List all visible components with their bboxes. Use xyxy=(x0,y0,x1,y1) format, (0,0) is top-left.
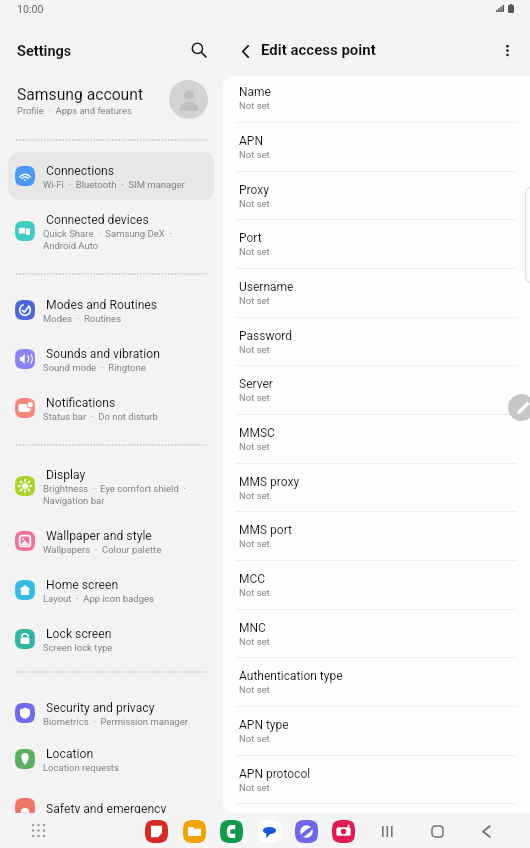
staticText: Not set xyxy=(239,198,270,209)
staticText: Security and privacy xyxy=(46,701,155,715)
staticText: Not set xyxy=(239,490,270,501)
staticText: Authentication type xyxy=(239,669,343,683)
staticText: 10:00 xyxy=(17,3,44,15)
button[interactable]: More options xyxy=(491,35,523,67)
button[interactable]: contacts xyxy=(220,820,243,843)
staticText: Not set xyxy=(239,538,270,549)
button[interactable]: Search xyxy=(181,32,217,68)
staticText: MNC xyxy=(239,621,266,635)
staticText: Profile · Apps and features xyxy=(17,105,132,116)
staticText: Edit access point xyxy=(261,41,376,59)
staticText: Server xyxy=(239,377,273,391)
staticText: Port xyxy=(239,231,262,245)
button[interactable]: Username xyxy=(222,268,530,317)
staticText: Sound mode · Ringtone xyxy=(43,362,146,373)
button[interactable]: Apps xyxy=(26,818,50,842)
staticText: Name xyxy=(239,85,271,99)
staticText: APN type xyxy=(239,718,289,732)
staticText: Not set xyxy=(239,684,270,695)
staticText: Biometrics · Permission manager xyxy=(43,716,188,727)
button[interactable]: camera xyxy=(332,820,355,843)
button[interactable]: Sounds and vibration xyxy=(8,335,214,383)
button[interactable]: Back xyxy=(475,820,497,842)
staticText: Proxy xyxy=(239,183,269,197)
staticText: Home screen xyxy=(46,578,119,592)
button[interactable]: Edge panel xyxy=(508,394,530,421)
button[interactable]: MVNO type xyxy=(222,803,530,813)
staticText: Screen lock type xyxy=(43,642,113,653)
button[interactable]: Proxy xyxy=(222,171,530,220)
staticText: Display xyxy=(46,468,86,482)
staticText: Quick Share · Samsung DeX · Android Auto xyxy=(43,228,172,251)
staticText: Location requests xyxy=(43,762,119,773)
staticText: Sounds and vibration xyxy=(46,347,160,361)
button[interactable]: Lock screen xyxy=(8,615,214,663)
button[interactable]: MMS port xyxy=(222,511,530,560)
button[interactable]: APN protocol xyxy=(222,755,530,804)
staticText: Password xyxy=(239,329,293,343)
button[interactable]: Password xyxy=(222,317,530,366)
button[interactable]: Authentication type xyxy=(222,657,530,706)
button[interactable]: notes xyxy=(145,820,168,843)
button[interactable]: Notifications xyxy=(8,384,214,432)
staticText: Not set xyxy=(239,344,270,355)
button[interactable]: Name xyxy=(222,76,530,122)
button[interactable]: Connections xyxy=(8,152,214,200)
button[interactable]: Back xyxy=(229,35,261,67)
button[interactable]: messages xyxy=(258,820,281,843)
staticText: Wi-Fi · Bluetooth · SIM manager xyxy=(43,179,185,190)
staticText: Not set xyxy=(239,782,270,793)
staticText: APN xyxy=(239,134,263,148)
staticText: Not set xyxy=(239,100,270,111)
button[interactable]: Port xyxy=(222,219,530,268)
button[interactable]: Wallpaper and style xyxy=(8,517,214,565)
staticText: Modes · Routines xyxy=(43,313,122,324)
button[interactable]: MNC xyxy=(222,609,530,658)
staticText: Safety and emergency xyxy=(46,802,167,816)
button[interactable]: Home screen xyxy=(8,566,214,614)
staticText: MCC xyxy=(239,572,266,586)
button[interactable]: Server xyxy=(222,365,530,414)
staticText: Location xyxy=(46,747,94,761)
staticText: MMSC xyxy=(239,426,275,440)
button[interactable]: files xyxy=(183,820,206,843)
staticText: Wallpaper and style xyxy=(46,529,152,543)
staticText: Connections xyxy=(46,164,115,178)
button[interactable]: Display xyxy=(8,459,214,513)
staticText: MMS proxy xyxy=(239,475,300,489)
staticText: Not set xyxy=(239,246,270,257)
staticText: Wallpapers · Colour palette xyxy=(43,544,162,555)
button[interactable]: Security and privacy xyxy=(8,689,214,737)
staticText: Not set xyxy=(239,636,270,647)
staticText: Samsung account xyxy=(17,85,144,103)
button[interactable]: Safety and emergency xyxy=(8,784,214,832)
staticText: Lock screen xyxy=(46,627,112,641)
staticText: Not set xyxy=(239,295,270,306)
button[interactable]: MCC xyxy=(222,560,530,609)
button[interactable]: Modes and Routines xyxy=(8,286,214,334)
staticText: Not set xyxy=(239,587,270,598)
button[interactable]: APN type xyxy=(222,706,530,755)
staticText: Notifications xyxy=(46,396,116,410)
staticText: Not set xyxy=(239,441,270,452)
button[interactable]: MMS proxy xyxy=(222,463,530,512)
staticText: Layout · App icon badges xyxy=(43,593,154,604)
button[interactable]: MMSC xyxy=(222,414,530,463)
staticText: APN protocol xyxy=(239,767,311,781)
button[interactable]: Location xyxy=(8,735,214,783)
button[interactable]: Home xyxy=(426,820,448,842)
staticText: Username xyxy=(239,280,294,294)
staticText: Modes and Routines xyxy=(46,298,158,312)
staticText: Not set xyxy=(239,392,270,403)
staticText: Connected devices xyxy=(46,213,149,227)
button[interactable]: APN xyxy=(222,122,530,171)
button[interactable]: Recents xyxy=(376,820,398,842)
button[interactable]: Samsung account xyxy=(0,76,223,123)
staticText: Not set xyxy=(239,149,270,160)
button[interactable]: internet xyxy=(295,820,318,843)
staticText: Status bar · Do not disturb xyxy=(43,411,158,422)
button[interactable]: Connected devices xyxy=(8,204,214,258)
staticText: Settings xyxy=(17,43,72,60)
staticText: MMS port xyxy=(239,523,292,537)
staticText: Brightness · Eye comfort shield · Naviga… xyxy=(43,483,186,506)
